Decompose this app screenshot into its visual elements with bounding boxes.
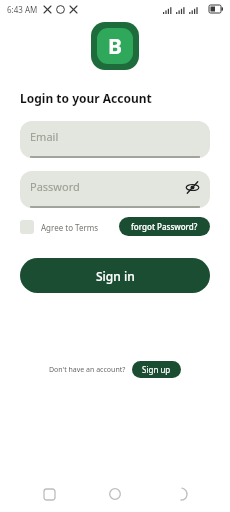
button[interactable]: Sign up — [132, 361, 181, 378]
button[interactable]: Back — [164, 477, 198, 511]
staticText: Login to your Account — [20, 90, 152, 106]
staticText: Agree to Terms — [41, 222, 99, 233]
staticText: 6:43 AM — [7, 4, 38, 15]
button[interactable]: Agree to Terms — [20, 220, 99, 234]
button[interactable]: Show password — [184, 179, 200, 195]
staticText: Sign up — [142, 364, 171, 375]
staticText: Sign in — [96, 268, 135, 284]
staticText: forgot Password? — [131, 221, 198, 232]
staticText: Password — [30, 179, 80, 194]
button[interactable]: Email — [20, 121, 210, 158]
staticText: B — [108, 32, 122, 61]
button[interactable]: Password — [20, 171, 210, 208]
staticText: Email — [30, 129, 59, 144]
button[interactable]: forgot Password? — [119, 217, 210, 236]
button[interactable]: Home — [98, 477, 132, 511]
button[interactable]: Sign in — [20, 258, 210, 293]
button[interactable]: Recents — [32, 477, 66, 511]
staticText: Don't have an account? — [49, 365, 126, 375]
